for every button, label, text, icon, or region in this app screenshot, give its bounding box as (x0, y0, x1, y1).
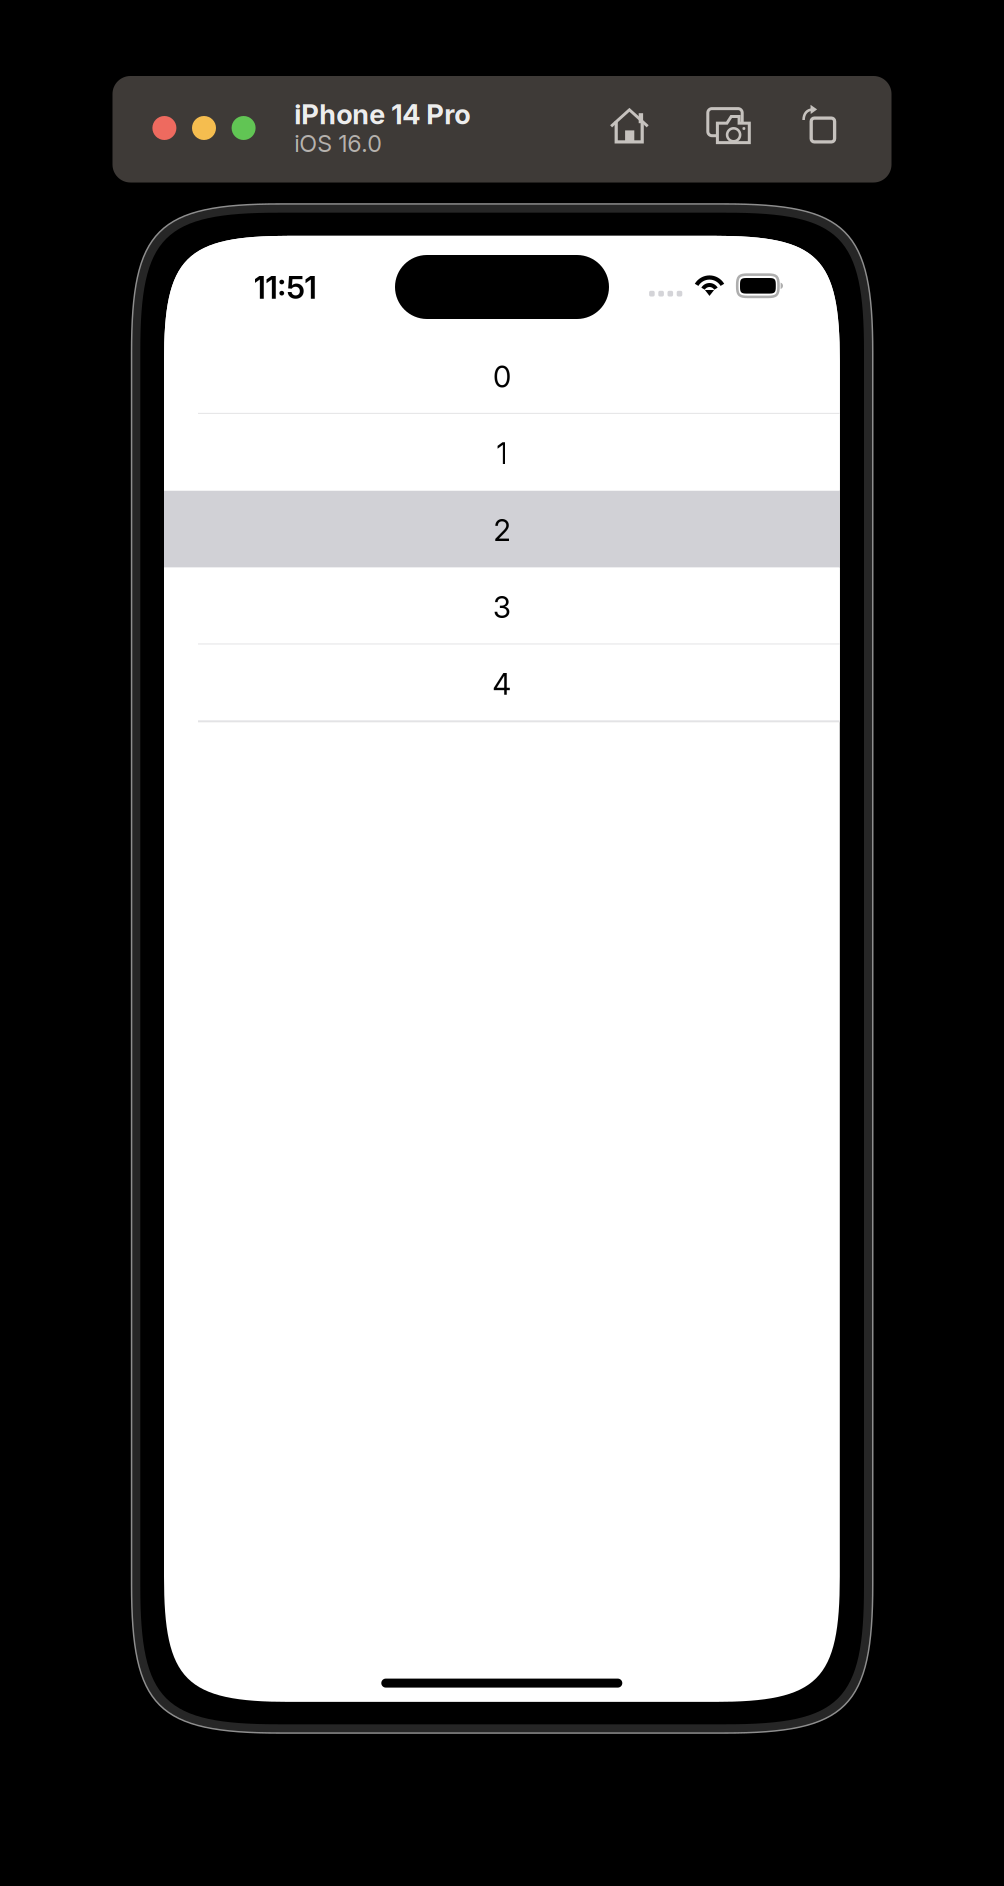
staticText: 2 (493, 513, 510, 548)
staticText: iOS 16.0 (294, 129, 382, 158)
button[interactable]: Rotate (802, 105, 835, 143)
button[interactable]: 4 (164, 644, 840, 721)
button[interactable]: Zoom (232, 116, 256, 140)
staticText: 11:51 (253, 269, 316, 306)
button[interactable]: 2 (164, 491, 840, 568)
staticText: 3 (493, 590, 511, 625)
button[interactable]: Screenshot (708, 109, 751, 145)
button[interactable]: Minimise (192, 116, 216, 140)
button[interactable]: 3 (164, 568, 840, 644)
staticText: 1 (496, 436, 507, 471)
button[interactable]: 1 (164, 414, 840, 491)
button[interactable]: Close (152, 116, 176, 140)
button[interactable]: Home (610, 107, 649, 143)
button[interactable]: 0 (164, 337, 840, 414)
staticText: 0 (493, 359, 511, 394)
staticText: 4 (492, 666, 511, 702)
staticText: iPhone 14 Pro (294, 98, 470, 131)
